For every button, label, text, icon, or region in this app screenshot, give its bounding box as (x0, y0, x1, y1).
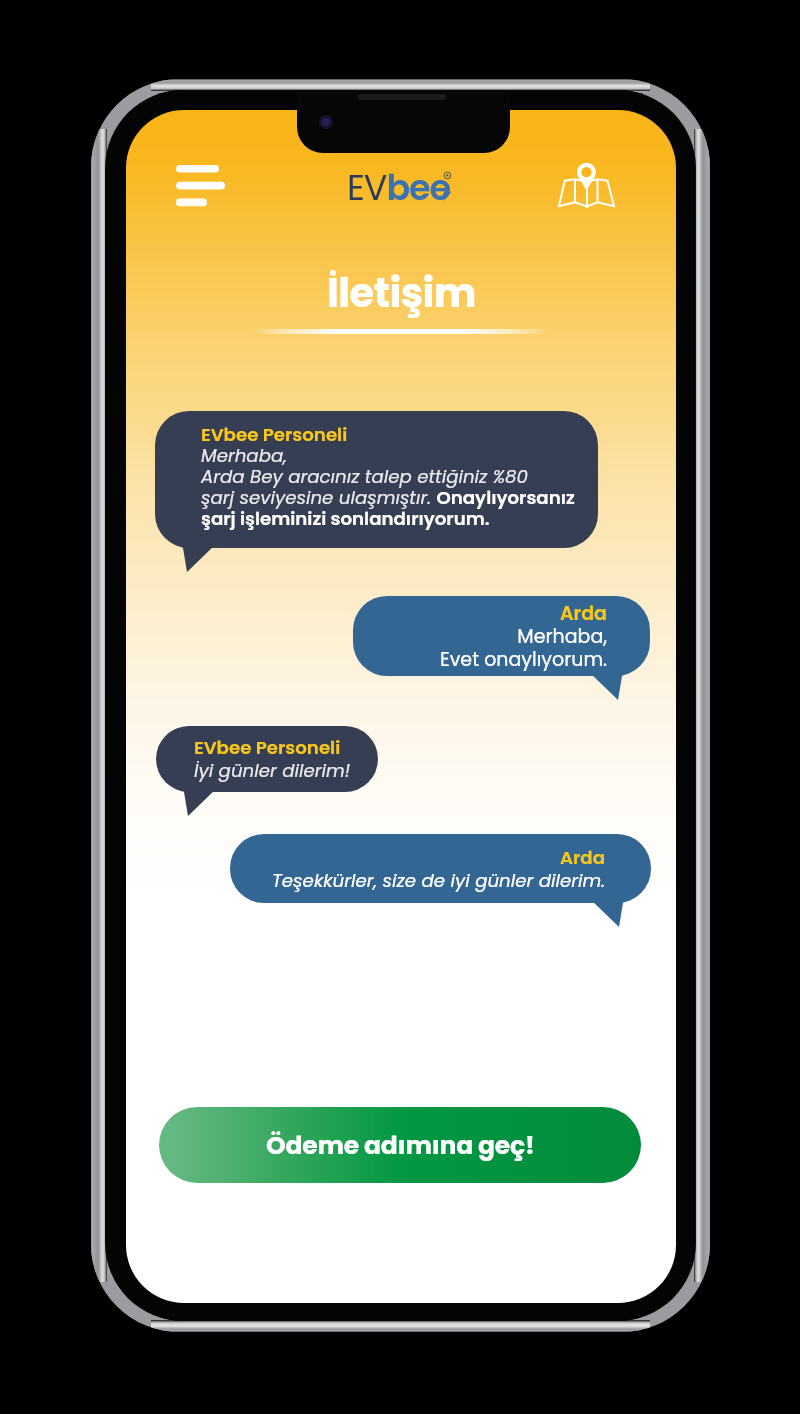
staticText: İletişim (327, 265, 476, 321)
staticText: Arda Teşekkürler, size de iyi günler dil… (250, 845, 605, 893)
staticText: EVbee (347, 163, 451, 209)
button[interactable]: EVbee Personeli İyi günler dilerim! (156, 726, 378, 792)
staticText: EVbee Personeli Merhaba, Arda Bey aracın… (201, 422, 580, 532)
staticText: Ödeme adımına geç! (266, 1128, 535, 1163)
staticText: Arda Merhaba, Evet onaylıyorum. (373, 600, 607, 672)
button[interactable]: Ödeme adımına geç! (159, 1107, 641, 1183)
button[interactable]: Arda Teşekkürler, size de iyi günler dil… (230, 834, 651, 903)
button[interactable]: EVbee Personeli Merhaba, Arda Bey aracın… (155, 411, 598, 548)
button[interactable]: Map (547, 154, 625, 218)
staticText: EVbee Personeli İyi günler dilerim! (194, 735, 351, 783)
button[interactable]: Menu (164, 156, 236, 216)
button[interactable]: Arda Merhaba, Evet onaylıyorum. (353, 596, 650, 676)
